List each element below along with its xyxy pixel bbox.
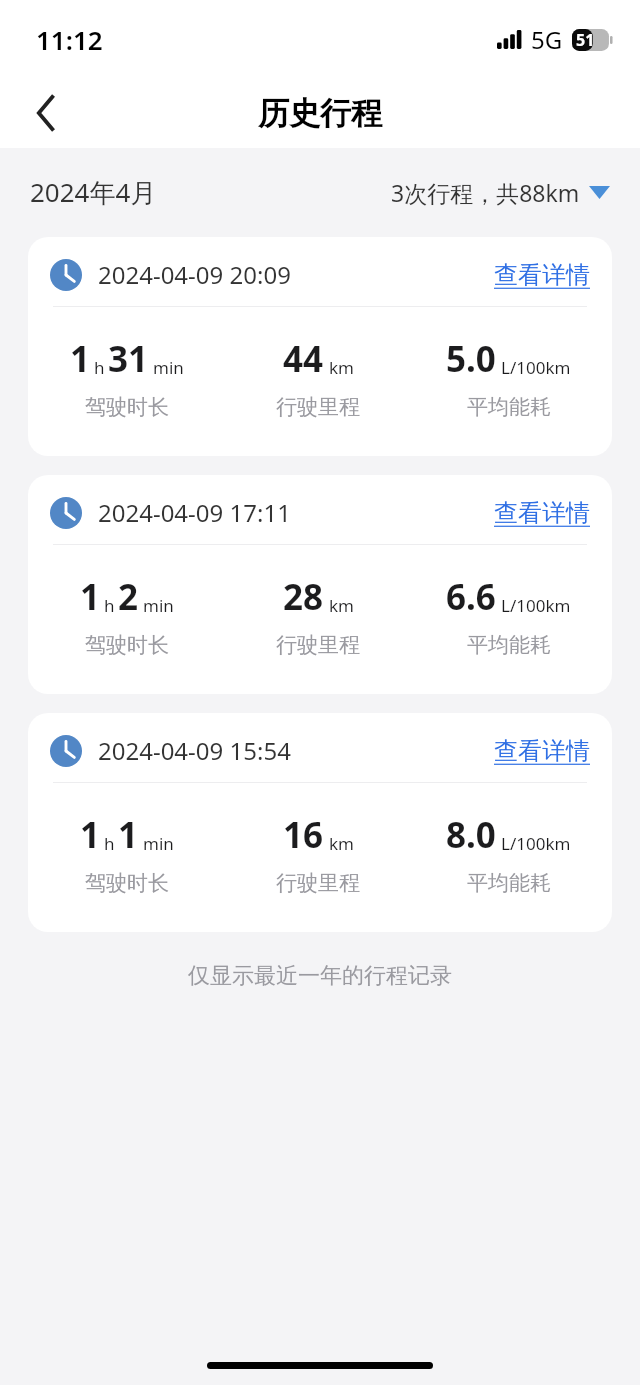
staticText: 8.0	[446, 811, 496, 859]
staticText: 1	[80, 573, 101, 621]
staticText: 驾驶时长	[85, 394, 169, 420]
staticText: 2024年4月	[30, 174, 157, 210]
staticText: L/100km	[501, 832, 571, 855]
button[interactable]: 查看详情	[494, 498, 590, 528]
staticText: 平均能耗	[467, 870, 551, 896]
staticText: h	[104, 832, 115, 855]
staticText: 2024-04-09 15:54	[98, 734, 291, 767]
staticText: L/100km	[501, 356, 571, 379]
staticText: 44	[283, 335, 324, 383]
button[interactable]: Back	[14, 81, 78, 145]
button[interactable]: 3次行程，共88km	[391, 177, 610, 208]
staticText: km	[329, 832, 354, 855]
staticText: 驾驶时长	[85, 870, 169, 896]
staticText: min	[143, 594, 174, 617]
staticText: 1	[118, 811, 139, 859]
staticText: 平均能耗	[467, 632, 551, 658]
staticText: 查看详情	[494, 736, 590, 766]
staticText: h	[94, 356, 105, 379]
staticText: 2	[118, 573, 139, 621]
staticText: 平均能耗	[467, 394, 551, 420]
staticText: min	[153, 356, 184, 379]
button[interactable]: 2024-04-09 15:54	[28, 713, 612, 932]
staticText: 2024-04-09 17:11	[98, 496, 291, 529]
staticText: 仅显示最近一年的行程记录	[188, 962, 452, 990]
staticText: 查看详情	[494, 260, 590, 290]
button[interactable]: 查看详情	[494, 736, 590, 766]
staticText: L/100km	[501, 594, 571, 617]
staticText: 查看详情	[494, 498, 590, 528]
staticText: km	[329, 356, 354, 379]
staticText: h	[104, 594, 115, 617]
staticText: min	[143, 832, 174, 855]
button[interactable]: 查看详情	[494, 260, 590, 290]
staticText: 51	[576, 29, 595, 51]
staticText: 1	[70, 335, 91, 383]
staticText: 5.0	[446, 335, 496, 383]
staticText: 行驶里程	[276, 870, 360, 896]
staticText: 31	[108, 335, 149, 383]
staticText: 驾驶时长	[85, 632, 169, 658]
staticText: km	[329, 594, 354, 617]
staticText: 16	[283, 811, 324, 859]
staticText: 2024-04-09 20:09	[98, 258, 291, 291]
staticText: 行驶里程	[276, 394, 360, 420]
staticText: 3次行程，共88km	[391, 177, 580, 208]
staticText: 1	[80, 811, 101, 859]
button[interactable]: 2024-04-09 20:09	[28, 237, 612, 456]
staticText: 11:12	[36, 22, 103, 57]
staticText: 28	[283, 573, 324, 621]
staticText: 行驶里程	[276, 632, 360, 658]
staticText: 6.6	[446, 573, 496, 621]
staticText: 5G	[531, 23, 563, 56]
staticText: 历史行程	[258, 94, 382, 133]
button[interactable]: 2024-04-09 17:11	[28, 475, 612, 694]
